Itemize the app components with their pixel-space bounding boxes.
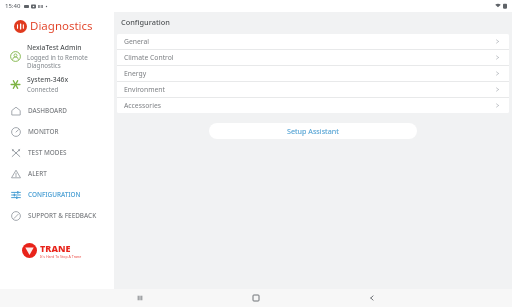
button[interactable]: DASHBOARD bbox=[0, 100, 114, 121]
staticText: TRANE bbox=[40, 242, 71, 254]
staticText: ALERT bbox=[28, 169, 47, 178]
staticText: Connected bbox=[27, 85, 59, 93]
button[interactable]: Environment bbox=[117, 82, 509, 97]
button[interactable]: CONFIGURATION bbox=[0, 184, 114, 205]
button[interactable]: Energy bbox=[117, 66, 509, 81]
button[interactable]: NexiaTest Admin bbox=[0, 40, 114, 71]
staticText: TEST MODES bbox=[28, 148, 67, 157]
button[interactable]: Back bbox=[362, 289, 382, 307]
staticText: DASHBOARD bbox=[28, 106, 67, 115]
staticText: System-346x bbox=[27, 75, 69, 84]
staticText: Climate Control bbox=[124, 53, 174, 62]
button[interactable]: Setup Assistant bbox=[209, 123, 417, 139]
button[interactable]: General bbox=[117, 34, 509, 49]
staticText: Energy bbox=[124, 69, 147, 78]
button[interactable]: Recent apps bbox=[130, 289, 150, 307]
staticText: Configuration bbox=[121, 17, 170, 27]
button[interactable]: Climate Control bbox=[117, 50, 509, 65]
staticText: Setup Assistant bbox=[287, 126, 339, 136]
button[interactable]: ALERT bbox=[0, 163, 114, 184]
button[interactable]: MONITOR bbox=[0, 121, 114, 142]
button[interactable]: Accessories bbox=[117, 98, 509, 113]
staticText: Diagnostics bbox=[30, 18, 93, 34]
staticText: Accessories bbox=[124, 101, 161, 110]
button[interactable]: SUPPORT & FEEDBACK bbox=[0, 205, 114, 226]
button[interactable]: System-346x bbox=[0, 73, 114, 95]
staticText: Logged in to Remote bbox=[27, 53, 88, 61]
button[interactable]: Home bbox=[246, 289, 266, 307]
staticText: MONITOR bbox=[28, 127, 59, 136]
staticText: Diagnostics bbox=[27, 61, 61, 69]
staticText: CONFIGURATION bbox=[28, 190, 81, 199]
staticText: 15:40 bbox=[5, 2, 21, 10]
staticText: General bbox=[124, 37, 150, 46]
button[interactable]: TEST MODES bbox=[0, 142, 114, 163]
staticText: Environment bbox=[124, 85, 166, 94]
staticText: SUPPORT & FEEDBACK bbox=[28, 211, 97, 220]
staticText: It's Hard To Stop A Trane bbox=[40, 254, 82, 259]
staticText: NexiaTest Admin bbox=[27, 43, 82, 52]
